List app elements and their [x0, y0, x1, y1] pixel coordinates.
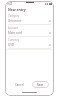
button[interactable]: Category: [5, 13, 54, 25]
staticText: Account: [8, 26, 18, 30]
staticText: 9:41: [7, 2, 13, 6]
staticText: Currency: [8, 38, 19, 42]
staticText: Cancel: [15, 83, 24, 87]
staticText: Main card: [8, 31, 22, 35]
button[interactable]: Currency: [5, 37, 54, 49]
staticText: Category: [8, 14, 20, 18]
button[interactable]: Account: [5, 25, 54, 37]
staticText: New entry: [8, 7, 26, 12]
button[interactable]: Save: [32, 81, 49, 88]
staticText: USD: [8, 43, 15, 47]
button[interactable]: Cancel: [13, 81, 26, 88]
staticText: Save: [37, 83, 44, 87]
staticText: Groceries: [8, 19, 22, 23]
